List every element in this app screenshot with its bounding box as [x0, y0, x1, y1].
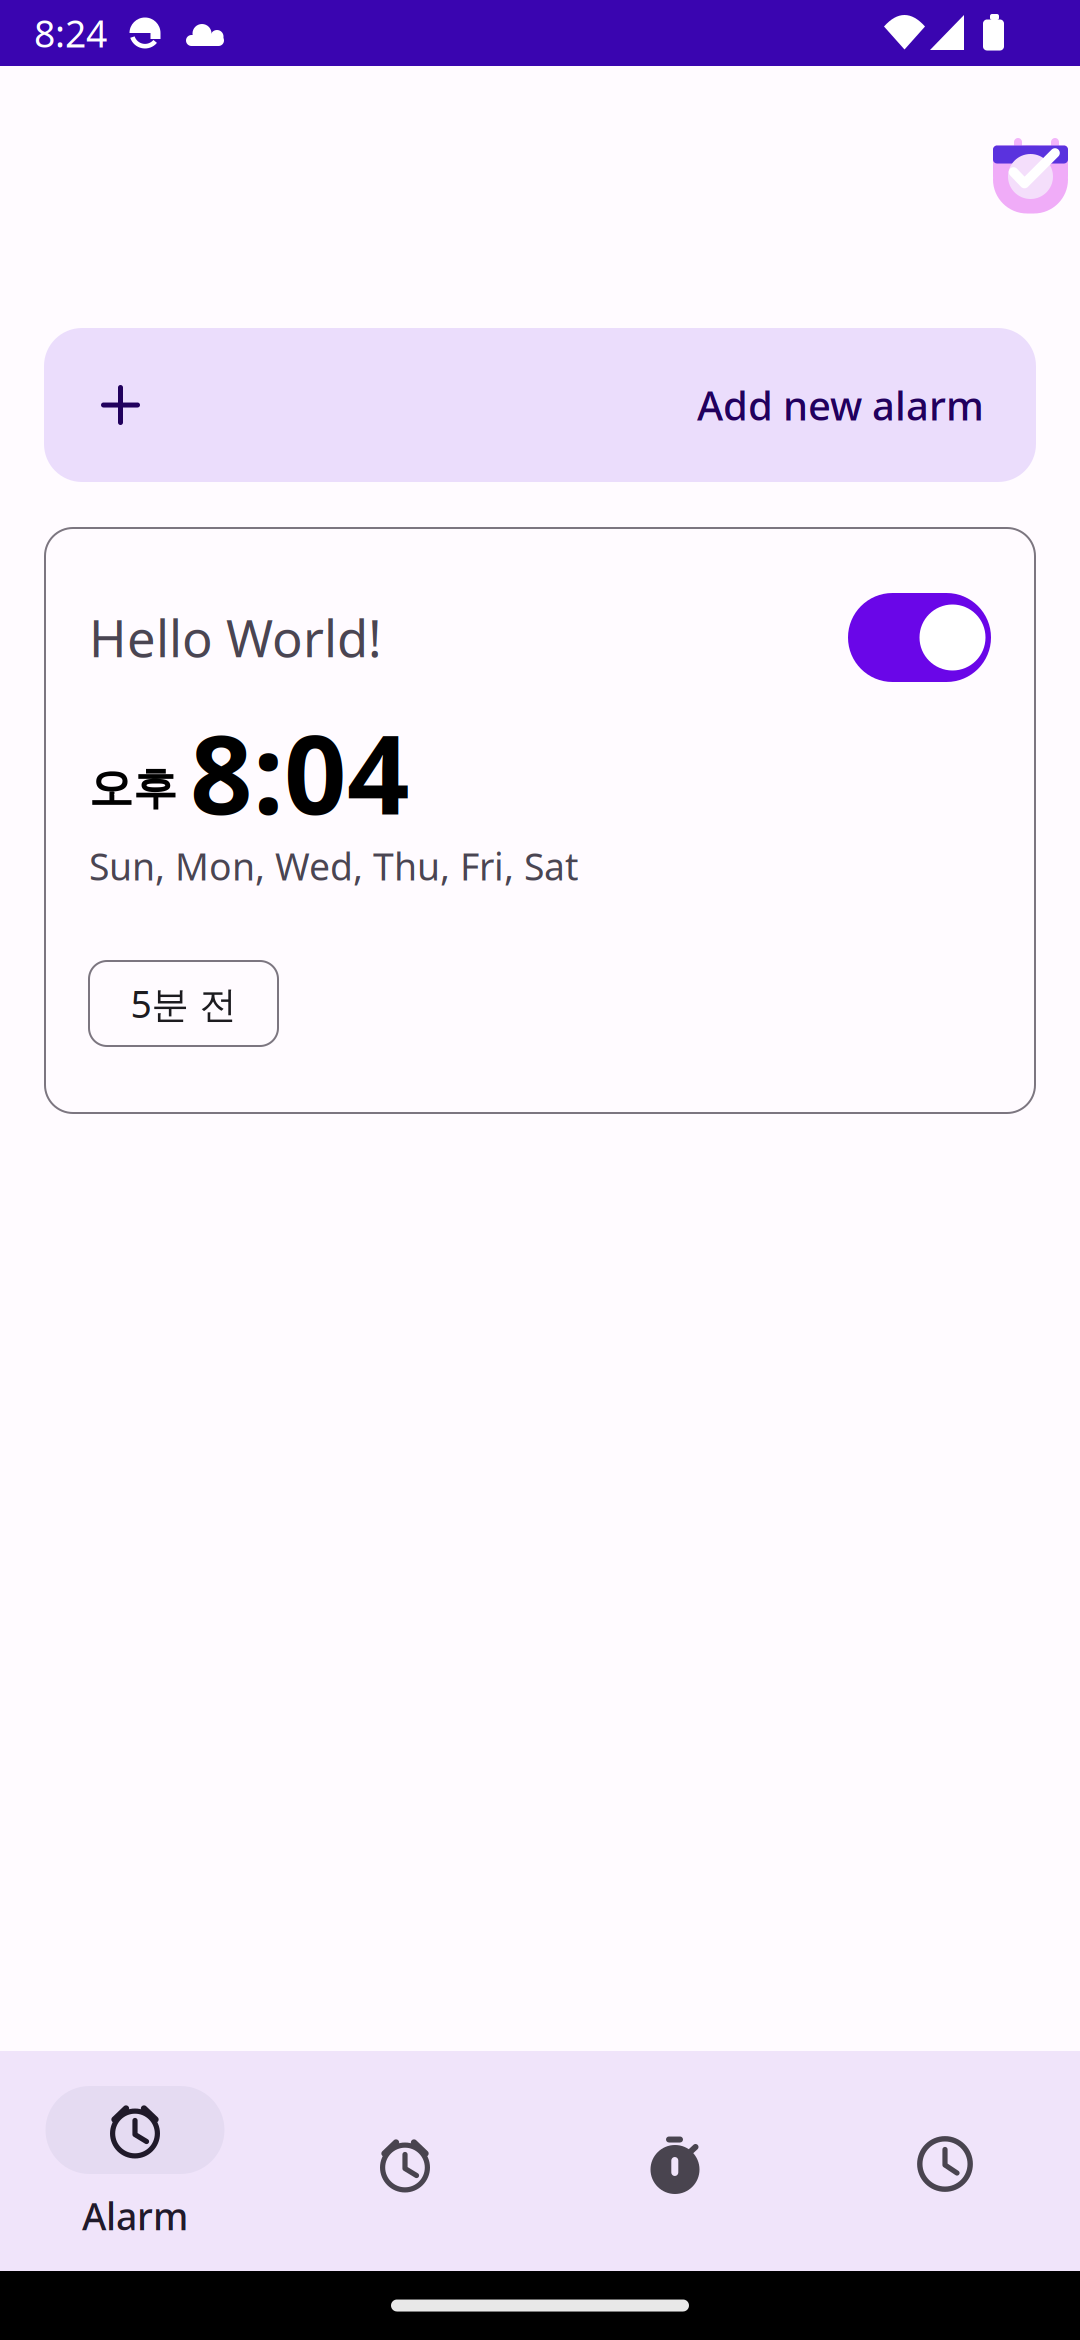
- button[interactable]: Add new alarm: [44, 328, 1036, 482]
- staticText: Alarm: [82, 2191, 188, 2241]
- staticText: 오후: [89, 762, 177, 816]
- staticText: 8:24: [34, 8, 107, 58]
- staticText: 5분 전: [130, 979, 236, 1028]
- button[interactable]: Timer: [810, 2051, 1080, 2271]
- staticText: Sun, Mon, Wed, Thu, Fri, Sat: [89, 841, 578, 891]
- button[interactable]: Alarm on: [848, 593, 991, 682]
- button[interactable]: 5분 전: [89, 961, 278, 1046]
- button[interactable]: Alarm: [0, 2051, 270, 2271]
- staticText: Hello World!: [89, 604, 382, 671]
- button[interactable]: Hello World!: [45, 528, 1035, 1113]
- staticText: Add new alarm: [697, 378, 984, 431]
- button[interactable]: Stopwatch: [540, 2051, 810, 2271]
- staticText: 8:04: [190, 699, 410, 845]
- button[interactable]: World clock: [270, 2051, 540, 2271]
